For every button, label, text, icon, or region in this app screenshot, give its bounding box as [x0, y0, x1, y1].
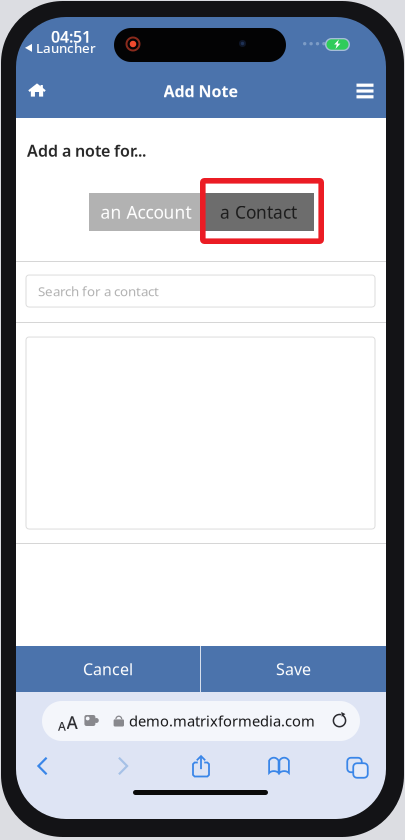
button[interactable]: an Account — [89, 193, 203, 231]
button[interactable]: Menu — [345, 71, 385, 111]
button[interactable]: Cancel — [16, 646, 200, 692]
staticText: Add a note for... — [27, 140, 146, 161]
staticText: A — [58, 718, 66, 734]
staticText: an Account — [100, 200, 191, 223]
staticText: demo.matrixformedia.com — [129, 711, 315, 730]
button[interactable]: A — [42, 701, 360, 741]
button[interactable]: Tabs — [328, 748, 381, 782]
staticText: a Contact — [220, 200, 297, 223]
button[interactable]: Forward — [96, 749, 149, 783]
button[interactable]: a Contact — [203, 193, 314, 231]
button[interactable]: Save — [201, 646, 386, 692]
staticText: Launcher — [36, 39, 96, 57]
staticText: Cancel — [83, 658, 133, 680]
button[interactable]: Home — [17, 70, 57, 110]
button[interactable]: Bookmarks — [252, 749, 305, 783]
button[interactable]: Search for a contact — [26, 275, 375, 307]
button[interactable]: Back — [16, 749, 69, 783]
staticText: Add Note — [163, 80, 238, 102]
staticText: Save — [276, 658, 311, 680]
staticText: Search for a contact — [38, 282, 159, 300]
button[interactable]: Share — [174, 749, 227, 783]
staticText: A — [66, 711, 77, 734]
staticText: 04:51 — [51, 26, 91, 47]
